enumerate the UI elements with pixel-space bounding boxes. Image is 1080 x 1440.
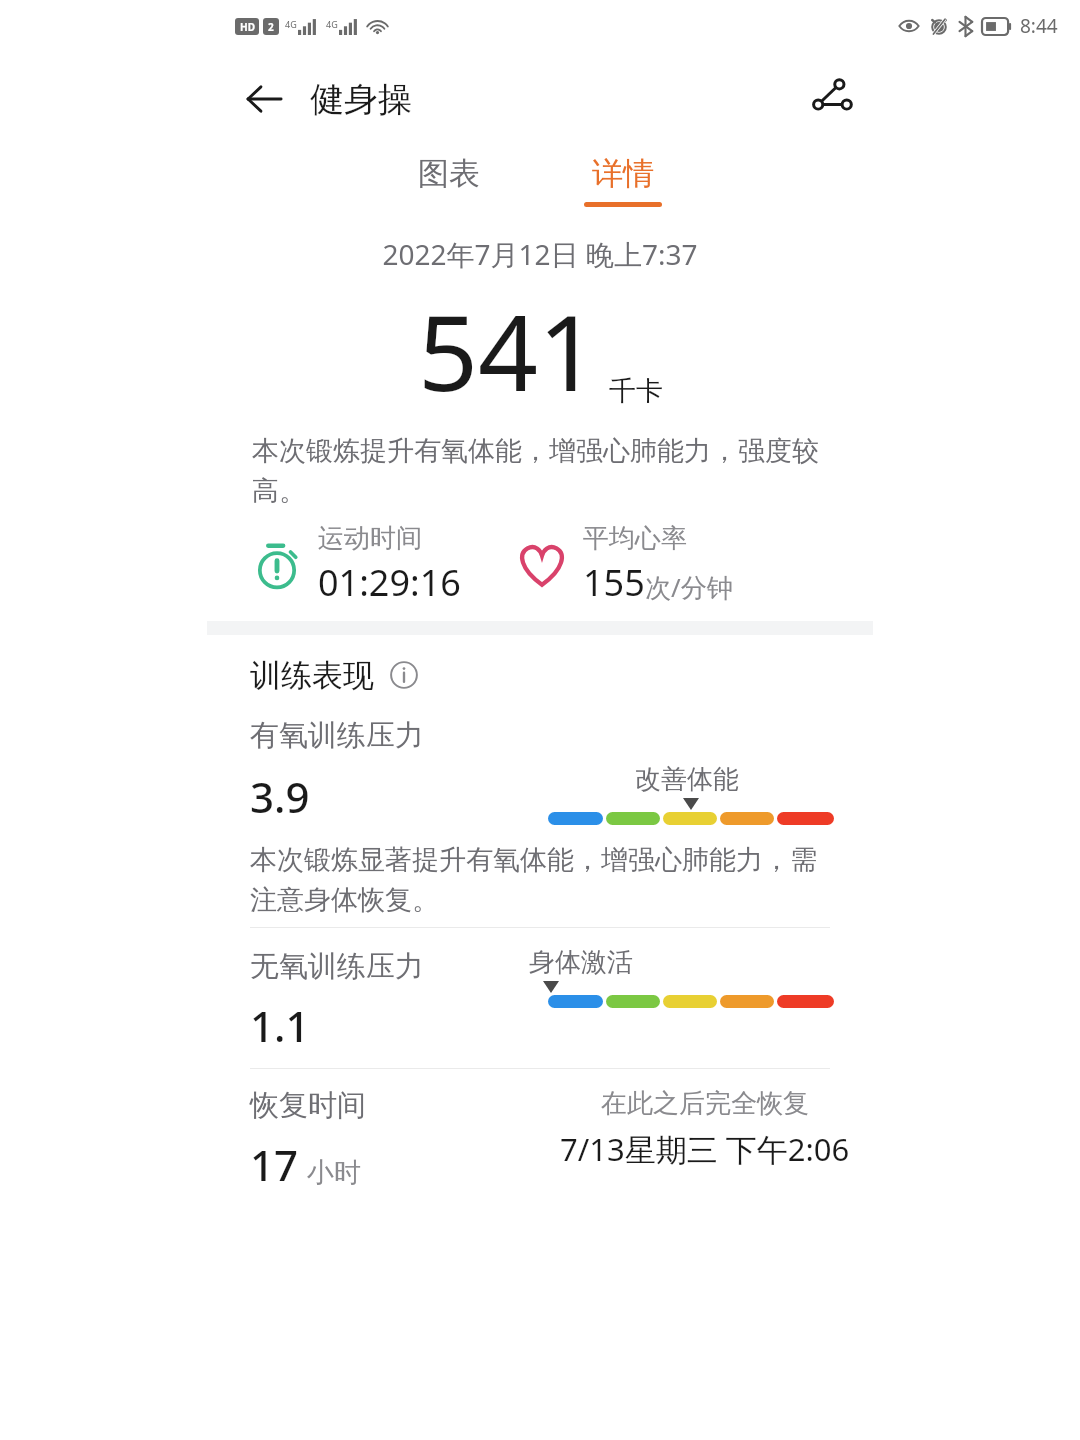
staticText: 155 [583, 558, 645, 607]
staticText: 图表 [418, 154, 480, 193]
staticText: 健身操 [310, 78, 412, 121]
button[interactable]: 图表 [396, 146, 502, 215]
staticText: 身体激活 [529, 946, 633, 979]
staticText: 01:29:16 [318, 558, 461, 607]
staticText: 1.1 [250, 997, 310, 1054]
staticText: 千卡 [609, 374, 663, 408]
button[interactable]: Info [384, 655, 424, 695]
staticText: 本次锻炼提升有氧体能，增强心肺能力，强度较高。 [252, 434, 828, 508]
button[interactable]: Share [800, 67, 864, 131]
staticText: 本次锻炼显著提升有氧体能，增强心肺能力，需注意身体恢复。 [250, 843, 838, 917]
staticText: 详情 [592, 154, 654, 193]
button[interactable]: 详情 [562, 146, 684, 215]
staticText: 2 [268, 20, 274, 34]
staticText: HD [240, 20, 255, 34]
staticText: 改善体能 [635, 763, 739, 796]
staticText: 训练表现 [250, 656, 374, 695]
staticText: 次/分钟 [645, 569, 733, 605]
staticText: 恢复时间 [250, 1087, 366, 1124]
staticText: 在此之后完全恢复 [601, 1087, 809, 1120]
staticText: 有氧训练压力 [250, 717, 424, 754]
button[interactable]: Back [232, 67, 296, 131]
staticText: 17 [250, 1136, 299, 1193]
staticText: 运动时间 [318, 522, 422, 555]
staticText: 平均心率 [583, 522, 687, 555]
staticText: 4G [285, 18, 297, 30]
staticText: 小时 [307, 1156, 361, 1190]
staticText: 541 [418, 279, 599, 422]
staticText: 3.9 [250, 768, 310, 825]
staticText: 2022年7月12日 晚上7:37 [0, 235, 1080, 273]
staticText: 8:44 [1020, 13, 1058, 39]
staticText: 4G [326, 18, 338, 30]
staticText: 无氧训练压力 [250, 948, 424, 985]
staticText: 7/13星期三 下午2:06 [560, 1128, 850, 1170]
